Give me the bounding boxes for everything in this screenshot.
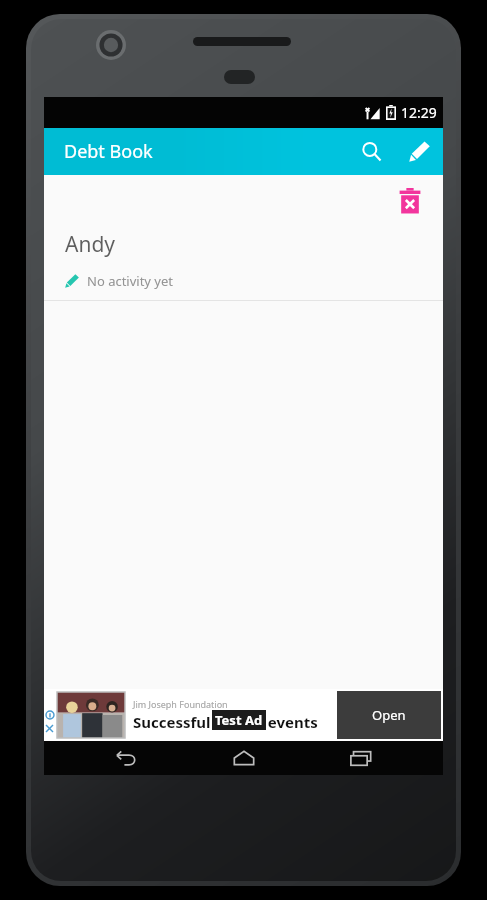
staticText: 12:29 [401,103,437,122]
staticText: No activity yet [87,272,174,290]
staticText: Test Ad [215,711,263,729]
staticText: Successful virtual events [133,712,318,732]
button[interactable]: Edit [395,128,443,175]
button[interactable]: Delete [393,184,427,218]
staticText: Jim Joseph Foundation [133,698,228,710]
button[interactable]: Recents [326,741,396,775]
button[interactable]: Delete [44,175,443,300]
staticText: Open [372,706,406,724]
staticText: Debt Book [64,139,153,164]
button[interactable]: Back [91,741,161,775]
staticText: Andy [65,230,116,259]
button[interactable]: Open [337,691,441,739]
button[interactable]: Jim Joseph Foundation [44,689,443,741]
button[interactable]: Search [347,128,395,175]
button[interactable]: Home [209,741,279,775]
